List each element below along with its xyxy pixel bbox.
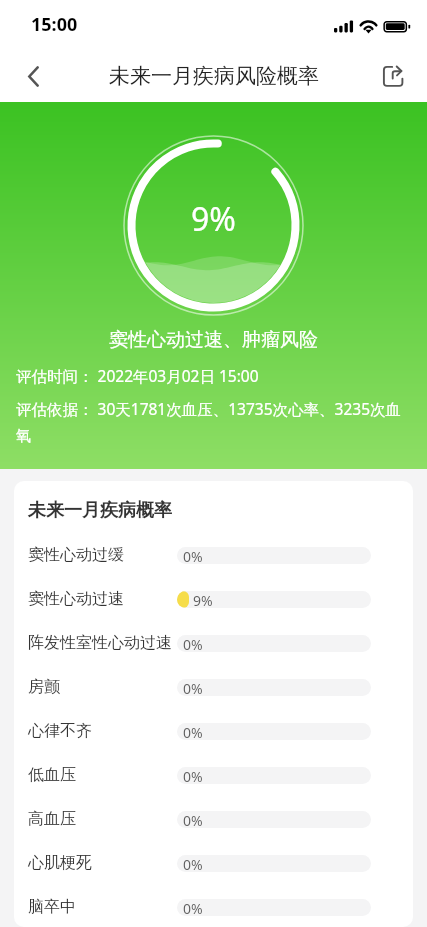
staticText: 9% xyxy=(193,591,213,608)
staticText: 心肌梗死 xyxy=(28,853,92,873)
staticText: 未来一月疾病风险概率 xyxy=(109,63,319,89)
staticText: 0% xyxy=(183,899,203,916)
staticText: 窦性心动过缓 xyxy=(28,545,124,565)
button[interactable]: Back xyxy=(7,50,59,102)
staticText: 心律不齐 xyxy=(28,721,92,741)
button[interactable]: 窦性心动过速 xyxy=(14,589,413,633)
staticText: 0% xyxy=(183,635,203,652)
staticText: 评估依据： 30天1781次血压、13735次心率、3235次血氧 xyxy=(16,398,407,446)
staticText: 脑卒中 xyxy=(28,897,76,917)
staticText: 0% xyxy=(183,547,203,564)
staticText: 9% xyxy=(191,197,236,241)
button[interactable]: Share xyxy=(367,50,419,102)
button[interactable]: 低血压 xyxy=(14,765,413,809)
button[interactable]: 窦性心动过缓 xyxy=(14,545,413,589)
staticText: 阵发性室性心动过速 xyxy=(28,633,172,653)
staticText: 0% xyxy=(183,811,203,828)
button[interactable]: 高血压 xyxy=(14,809,413,853)
staticText: 未来一月疾病概率 xyxy=(28,499,172,522)
button[interactable]: 阵发性室性心动过速 xyxy=(14,633,413,677)
staticText: 高血压 xyxy=(28,809,76,829)
staticText: 评估时间： 2022年03月02日 15:00 xyxy=(16,365,259,386)
staticText: 窦性心动过速、肿瘤风险 xyxy=(0,328,427,352)
staticText: 0% xyxy=(183,767,203,784)
staticText: 房颤 xyxy=(28,677,60,697)
button[interactable]: 脑卒中 xyxy=(14,897,413,927)
staticText: 15:00 xyxy=(31,12,78,37)
staticText: 0% xyxy=(183,679,203,696)
staticText: 低血压 xyxy=(28,765,76,785)
staticText: 窦性心动过速 xyxy=(28,589,124,609)
button[interactable]: 心肌梗死 xyxy=(14,853,413,897)
staticText: 0% xyxy=(183,855,203,872)
button[interactable]: 房颤 xyxy=(14,677,413,721)
staticText: 0% xyxy=(183,723,203,740)
button[interactable]: 心律不齐 xyxy=(14,721,413,765)
